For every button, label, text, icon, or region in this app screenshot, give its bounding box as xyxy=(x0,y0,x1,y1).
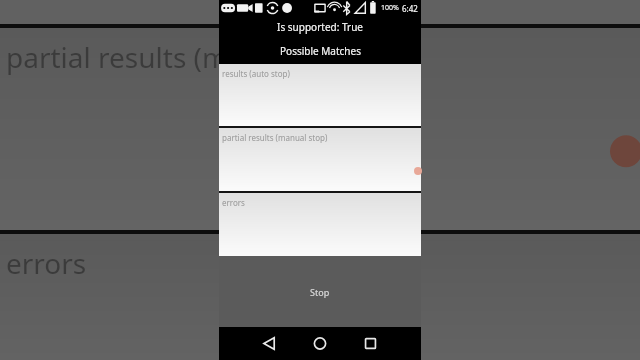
staticText: Is supported: True xyxy=(277,20,363,34)
button[interactable]: Recent apps xyxy=(354,327,421,360)
button[interactable]: partial results (manual stop) xyxy=(219,128,421,191)
staticText: errors xyxy=(6,244,87,282)
staticText: partial results (m xyxy=(6,38,229,76)
button[interactable]: Home xyxy=(287,327,354,360)
staticText: errors xyxy=(222,197,245,208)
button[interactable]: errors xyxy=(219,193,421,256)
button[interactable]: Back xyxy=(219,327,287,360)
staticText: Possible Matches xyxy=(280,44,361,58)
staticText: results (auto stop) xyxy=(222,68,290,79)
staticText: 6:42 xyxy=(402,3,418,14)
staticText: Stop xyxy=(310,286,330,298)
staticText: partial results (manual stop) xyxy=(222,132,328,143)
button[interactable]: results (auto stop) xyxy=(219,64,421,126)
button[interactable]: Stop xyxy=(219,256,421,327)
staticText: 100% xyxy=(381,3,399,13)
